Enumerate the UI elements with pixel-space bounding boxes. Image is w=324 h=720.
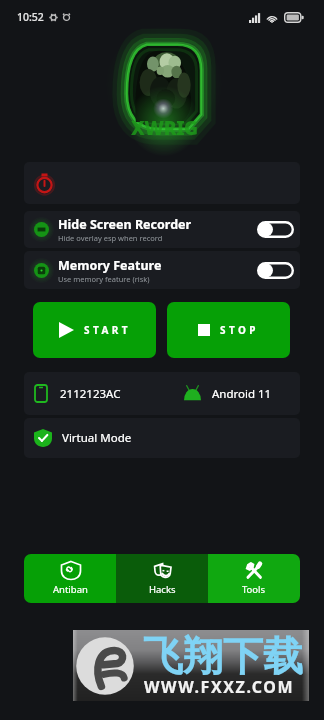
button[interactable]: Hide Screen Recorder	[24, 211, 300, 248]
staticText: 10:52	[17, 10, 44, 24]
staticText: STOP	[220, 323, 259, 337]
button[interactable]: Antiban	[24, 554, 116, 603]
staticText: Memory Feature	[58, 257, 162, 274]
staticText: 2112123AC	[60, 386, 121, 402]
button[interactable]: Hacks	[116, 554, 208, 603]
button[interactable]: Memory Feature	[24, 251, 300, 289]
button[interactable]: Tools	[208, 554, 300, 603]
button[interactable]: Timer	[24, 162, 300, 204]
staticText: Android 11	[212, 386, 272, 402]
button[interactable]: 2112123AC	[24, 372, 300, 415]
staticText: START	[84, 323, 131, 337]
button[interactable]: STOP	[167, 302, 290, 358]
staticText: Hide Screen Recorder	[58, 216, 192, 233]
other: Timer	[34, 173, 55, 194]
button[interactable]: START	[33, 302, 156, 358]
staticText: Use memory feature (risk)	[58, 274, 150, 284]
staticText: 飞翔下载	[143, 631, 303, 681]
staticText: WWW.FXXZ.COM	[144, 676, 295, 698]
button[interactable]: Virtual Mode	[24, 418, 300, 458]
staticText: Hide overlay esp when record	[58, 233, 163, 243]
staticText: Tools	[242, 583, 266, 596]
button[interactable]: Toggle Hide Screen Recorder	[257, 221, 294, 238]
staticText: Hacks	[149, 583, 176, 596]
staticText: XWRIG	[131, 115, 198, 141]
staticText: Antiban	[53, 583, 88, 596]
staticText: Virtual Mode	[62, 430, 132, 446]
button[interactable]: Toggle Memory Feature	[257, 262, 294, 279]
